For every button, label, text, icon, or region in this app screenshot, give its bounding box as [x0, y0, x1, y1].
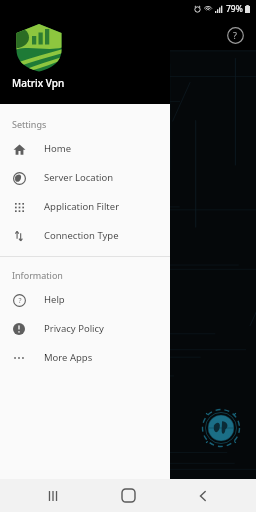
button[interactable]: Home	[0, 134, 170, 163]
staticText: Privacy Policy	[44, 322, 104, 335]
staticText: Settings	[12, 118, 47, 130]
button[interactable]: Server Location	[0, 163, 170, 192]
staticText: Home	[44, 142, 72, 155]
button[interactable]: Back	[181, 479, 225, 512]
button[interactable]: Home	[106, 479, 150, 512]
staticText: Application Filter	[44, 200, 120, 213]
button[interactable]: Connection Type	[0, 221, 170, 250]
staticText: Help	[44, 293, 65, 306]
button[interactable]: Help	[220, 20, 250, 50]
button[interactable]: Recent apps	[31, 479, 75, 512]
button[interactable]: More Apps	[0, 343, 170, 372]
staticText: Information	[12, 269, 63, 281]
staticText: ?	[18, 296, 22, 306]
button[interactable]: Privacy Policy	[0, 314, 170, 343]
staticText: Server Location	[44, 171, 114, 184]
staticText: ?	[233, 29, 237, 41]
staticText: 79%	[226, 3, 243, 15]
staticText: More Apps	[44, 351, 93, 364]
button[interactable]: Application Filter	[0, 192, 170, 221]
staticText: Connection Type	[44, 229, 119, 242]
staticText: Matrix Vpn	[12, 76, 65, 90]
button[interactable]: ?	[0, 285, 170, 314]
